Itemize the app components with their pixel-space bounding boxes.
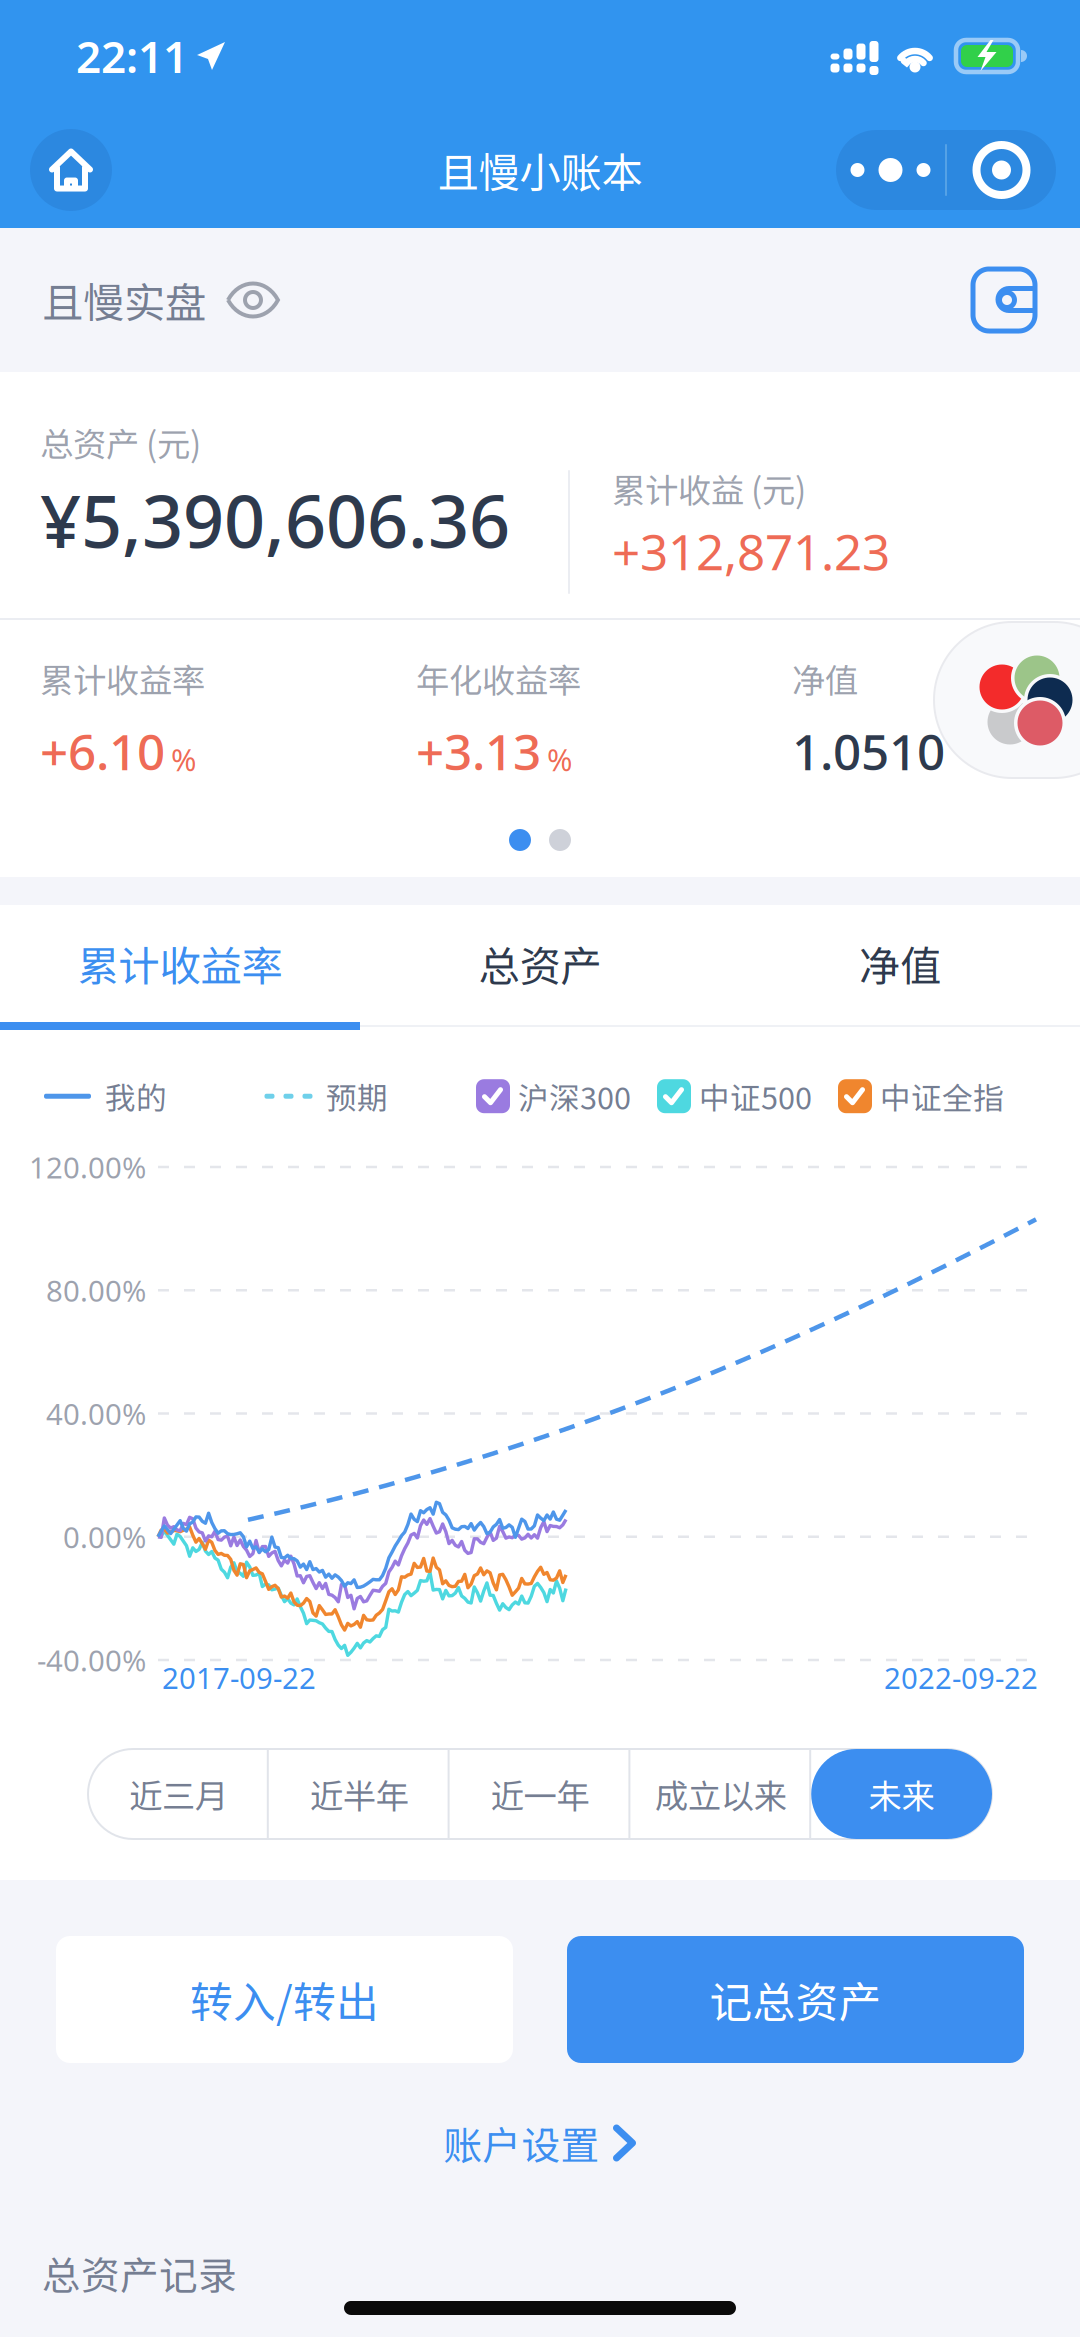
button[interactable]: 且慢实盘 <box>42 244 280 356</box>
button[interactable]: 净值 <box>720 905 1080 1030</box>
staticText: 成立以来 <box>655 1770 787 1818</box>
staticText: 中证500 <box>699 1074 812 1118</box>
staticText: 总资产 <box>478 934 601 993</box>
staticText: % <box>547 739 572 780</box>
staticText: 中证全指 <box>880 1074 1004 1118</box>
staticText: 80.00% <box>46 1271 146 1310</box>
button[interactable]: Brand <box>934 622 1080 778</box>
staticText: 40.00% <box>46 1394 146 1433</box>
staticText: 年化收益率 <box>416 654 581 702</box>
button[interactable]: 近三月 <box>88 1749 269 1839</box>
button[interactable]: Close <box>947 130 1056 210</box>
staticText: 账户设置 <box>443 2115 599 2171</box>
button[interactable]: 转入/转出 <box>56 1936 513 2063</box>
staticText: 总资产记录 <box>42 2245 237 2301</box>
staticText: 2017-09-22 <box>162 1658 316 1697</box>
staticText: +6.10 <box>40 718 165 784</box>
staticText: 转入/转出 <box>190 1969 379 2030</box>
button[interactable]: Wallet <box>970 267 1038 333</box>
staticText: 我的 <box>105 1074 167 1118</box>
button[interactable]: 近一年 <box>450 1749 630 1839</box>
staticText: 1.0510 <box>792 718 945 784</box>
button[interactable]: 成立以来 <box>630 1749 811 1839</box>
staticText: % <box>171 739 196 780</box>
button[interactable]: 沪深300 <box>476 1074 631 1118</box>
staticText: 总资产 (元) <box>40 418 201 466</box>
staticText: 近半年 <box>310 1770 409 1818</box>
button[interactable]: 未来 <box>811 1749 992 1839</box>
button[interactable]: 累计收益率 <box>0 905 360 1030</box>
staticText: 近一年 <box>490 1770 589 1818</box>
staticText: +312,871.23 <box>612 518 890 584</box>
button[interactable]: More <box>836 130 945 210</box>
button[interactable]: 总资产 <box>360 905 720 1030</box>
staticText: 未来 <box>869 1770 935 1818</box>
staticText: 22:11 <box>76 27 188 85</box>
staticText: 净值 <box>859 934 941 993</box>
button[interactable]: 中证500 <box>657 1074 812 1118</box>
staticText: 近三月 <box>129 1770 228 1818</box>
button[interactable]: 中证全指 <box>838 1074 1004 1118</box>
staticText: 120.00% <box>29 1147 146 1186</box>
button[interactable]: 账户设置 <box>443 2099 636 2187</box>
staticText: 记总资产 <box>709 1969 881 2030</box>
button[interactable]: 记总资产 <box>567 1936 1024 2063</box>
staticText: 累计收益率 <box>40 654 205 702</box>
staticText: 累计收益率 <box>77 934 282 993</box>
button[interactable]: Home <box>30 129 112 211</box>
staticText: 累计收益 (元) <box>612 464 806 512</box>
staticText: 沪深300 <box>518 1074 631 1118</box>
staticText: 净值 <box>792 654 858 702</box>
staticText: -40.00% <box>37 1640 146 1679</box>
staticText: 2022-09-22 <box>884 1658 1038 1697</box>
staticText: +3.13 <box>416 718 541 784</box>
staticText: ¥5,390,606.36 <box>40 472 510 568</box>
button[interactable]: 近半年 <box>269 1749 450 1839</box>
staticText: 预期 <box>326 1074 388 1118</box>
staticText: 且慢小账本 <box>437 140 642 200</box>
staticText: 且慢实盘 <box>42 270 206 330</box>
staticText: 0.00% <box>63 1517 146 1556</box>
